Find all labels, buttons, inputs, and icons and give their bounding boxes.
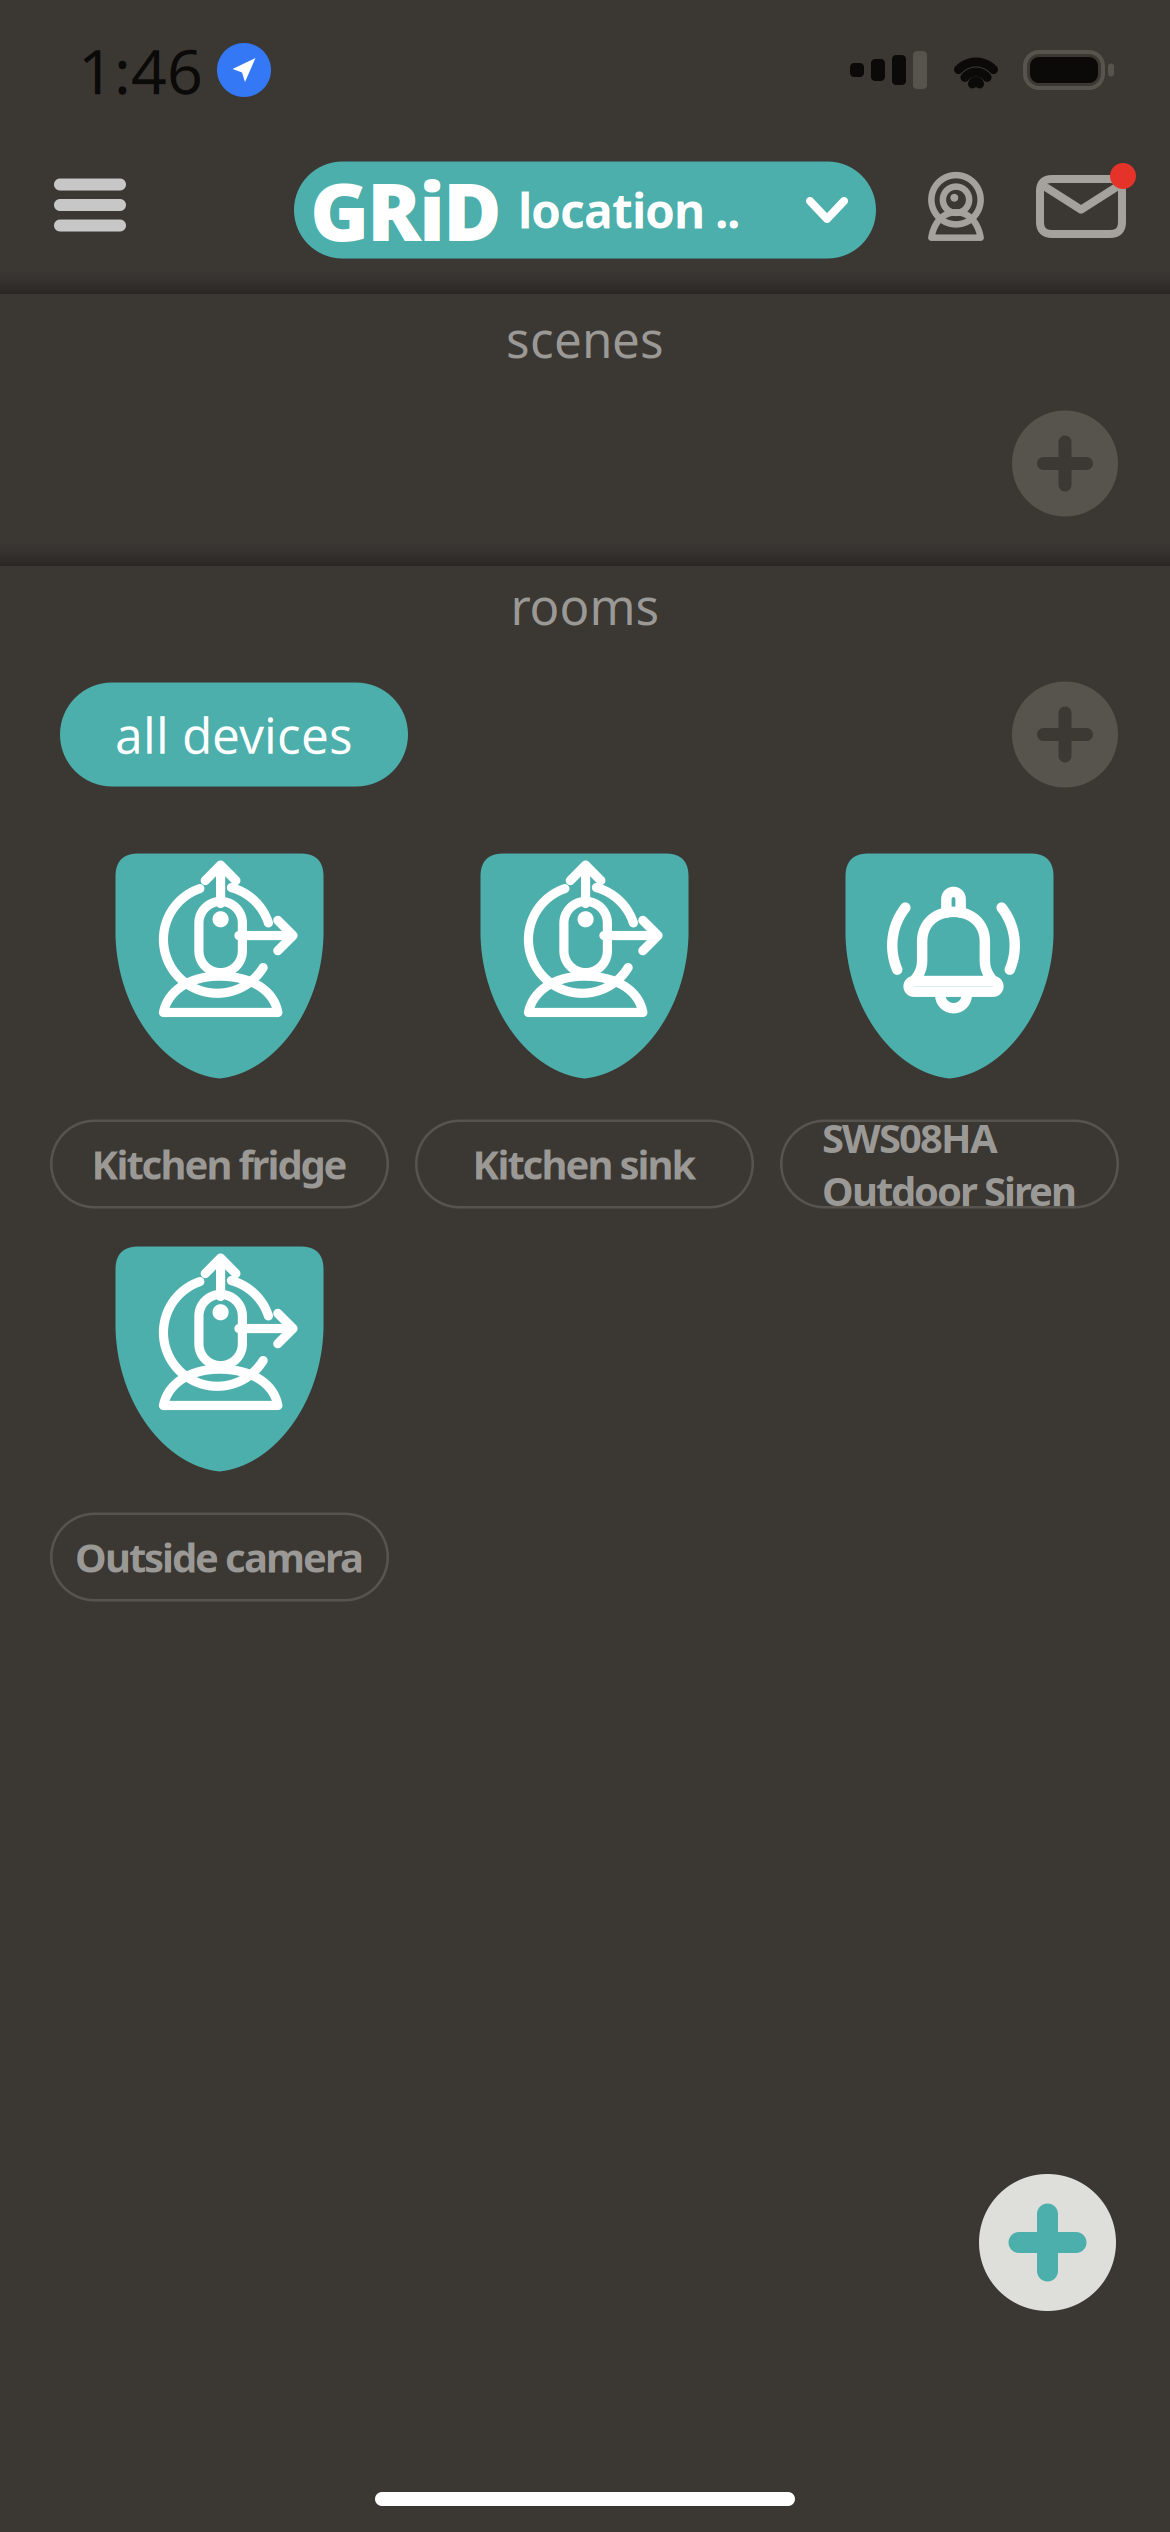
staticText: Kitchen sink [472,1137,696,1191]
button[interactable]: Add room [1012,681,1118,787]
button[interactable]: Kitchen fridge [50,853,389,1208]
staticText: SWS08HA Outdoor Siren [822,1111,1077,1217]
button[interactable]: Cameras [928,177,984,243]
staticText: 1:46 [78,28,203,112]
button[interactable]: Kitchen sink [415,853,754,1208]
staticText: location .. [518,178,740,242]
staticText: GRiD [310,157,502,263]
button[interactable]: SWS08HA Outdoor Siren [780,853,1119,1208]
staticText: Kitchen fridge [91,1137,347,1191]
button[interactable]: Messages [1036,182,1130,238]
button[interactable]: Outside camera [50,1246,389,1601]
button[interactable]: Add [979,2174,1116,2311]
staticText: scenes [506,306,664,371]
button[interactable]: Add scene [1012,410,1118,516]
staticText: all devices [115,702,353,767]
staticText: Outside camera [75,1530,364,1584]
button[interactable]: GRiD [294,161,876,258]
button[interactable]: all devices [60,682,408,786]
button[interactable]: Menu [18,170,162,250]
staticText: rooms [510,573,659,638]
